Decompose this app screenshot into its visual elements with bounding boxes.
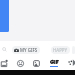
staticText: MY GIFS: [20, 47, 38, 53]
button[interactable]: GIF: [49, 56, 58, 70]
button[interactable]: Stickers: [0, 56, 9, 70]
button[interactable]: Images: [32, 56, 41, 70]
button[interactable]: MY GIFS: [12, 46, 40, 54]
button[interactable]: HAPPY: [51, 46, 70, 54]
staticText: HAPPY: [53, 47, 68, 53]
button[interactable]: Emoji: [16, 56, 25, 70]
button[interactable]: Smileys: [67, 56, 75, 70]
button[interactable]: Search GIFs: [0, 44, 9, 55]
